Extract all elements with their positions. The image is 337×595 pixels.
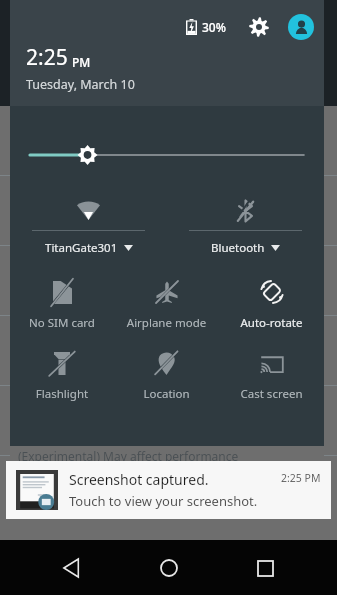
staticText: TitanGate301 xyxy=(45,240,118,256)
button[interactable]: Brightness xyxy=(30,140,304,170)
button[interactable]: Screenshot captured. xyxy=(6,461,331,519)
button[interactable]: Home xyxy=(145,544,193,592)
other: Battery charging 30 percent xyxy=(186,19,197,35)
button[interactable]: Location xyxy=(114,349,219,402)
button[interactable]: User profile xyxy=(288,14,314,40)
staticText: Touch to view your screenshot. xyxy=(69,492,258,510)
staticText: No SIM card xyxy=(10,315,114,331)
button[interactable]: Settings xyxy=(244,12,274,42)
staticText: Flashlight xyxy=(10,386,114,402)
staticText: Auto-rotate xyxy=(219,315,324,331)
staticText: 30% xyxy=(202,19,226,35)
staticText: PM xyxy=(72,54,91,70)
button[interactable]: Recent apps xyxy=(241,544,289,592)
staticText: Tuesday, March 10 xyxy=(26,76,135,93)
staticText: Airplane mode xyxy=(114,315,219,331)
button[interactable]: Airplane mode xyxy=(114,278,219,331)
button[interactable]: Back xyxy=(48,544,96,592)
staticText: (Experimental) May affect performance xyxy=(18,448,239,464)
staticText: 2:25 xyxy=(26,43,68,72)
button[interactable]: Cast screen xyxy=(219,349,324,402)
staticText: Cast screen xyxy=(219,386,324,402)
button[interactable]: Bluetooth xyxy=(167,198,324,256)
staticText: Screenshot captured. xyxy=(69,470,209,489)
button[interactable]: Auto-rotate xyxy=(219,278,324,331)
button[interactable]: TitanGate301 xyxy=(10,198,167,256)
button[interactable]: No SIM card xyxy=(10,278,114,331)
button[interactable]: 2:25 xyxy=(26,43,135,93)
staticText: 2:25 PM xyxy=(281,471,321,485)
staticText: Location xyxy=(114,386,219,402)
staticText: Bluetooth xyxy=(211,240,265,256)
button[interactable]: Flashlight xyxy=(10,349,114,402)
